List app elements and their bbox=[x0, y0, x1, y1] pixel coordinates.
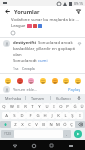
staticText: Paylaş bbox=[68, 87, 81, 92]
staticText: 1sa bbox=[13, 66, 19, 71]
button[interactable]: F bbox=[26, 112, 34, 119]
button[interactable]: Merhaba bbox=[2, 94, 25, 102]
button[interactable]: B bbox=[40, 121, 47, 128]
button[interactable]: Z bbox=[11, 121, 19, 128]
staticText: Q bbox=[2, 104, 6, 110]
staticText: 09:15 bbox=[74, 1, 83, 6]
button[interactable]: J bbox=[48, 112, 55, 119]
button[interactable]: Tamam bbox=[26, 94, 50, 102]
button[interactable]: Back bbox=[3, 7, 11, 15]
button[interactable]: Kullanıcı bbox=[51, 94, 75, 102]
staticText: O bbox=[59, 104, 63, 110]
button[interactable]: Emoji 1 bbox=[16, 77, 23, 84]
button[interactable]: T bbox=[29, 103, 36, 110]
button[interactable]: Y bbox=[36, 103, 43, 110]
button[interactable]: Filter bbox=[74, 7, 82, 15]
staticText: Vodafone sunar bu maçlarda biz UEFA Cham… bbox=[11, 17, 81, 23]
button[interactable]: destiyerifti bbox=[0, 38, 85, 73]
staticText: N bbox=[49, 122, 53, 128]
staticText: B bbox=[42, 122, 45, 128]
staticText: T bbox=[31, 104, 34, 110]
button[interactable]: V bbox=[33, 121, 40, 128]
button[interactable]: L bbox=[62, 112, 69, 119]
button[interactable]: Ğ bbox=[71, 103, 78, 110]
button[interactable]: Home bbox=[29, 141, 38, 150]
button[interactable]: ?123 bbox=[1, 130, 14, 138]
button[interactable]: K bbox=[55, 112, 62, 119]
staticText: Tamam bbox=[31, 96, 45, 101]
staticText: Ç bbox=[70, 122, 73, 128]
button[interactable]: Hide keyboard bbox=[66, 141, 75, 150]
staticText: K bbox=[57, 113, 60, 119]
button[interactable]: D bbox=[18, 112, 26, 119]
button[interactable]: S bbox=[10, 112, 18, 119]
staticText: Z bbox=[14, 122, 17, 128]
staticText: S bbox=[13, 113, 16, 119]
staticText: Merhaba bbox=[5, 96, 22, 101]
staticText: cumi bbox=[38, 58, 48, 64]
button[interactable]: P bbox=[64, 103, 71, 110]
button[interactable]: U bbox=[43, 103, 50, 110]
button[interactable]: Ç bbox=[68, 121, 75, 128]
button[interactable]: G bbox=[34, 112, 41, 119]
button[interactable]: A bbox=[2, 112, 10, 119]
button[interactable]: W bbox=[8, 103, 15, 110]
staticText: R bbox=[24, 104, 27, 110]
button[interactable]: M bbox=[54, 121, 61, 128]
button[interactable] bbox=[11, 31, 15, 35]
staticText: Y bbox=[38, 104, 41, 110]
button[interactable]: Ü bbox=[78, 103, 85, 110]
button[interactable]: Yorum ekle... bbox=[13, 87, 67, 92]
staticText: Ş bbox=[71, 113, 74, 119]
staticText: Ğ bbox=[73, 104, 77, 110]
button[interactable]: Emoji 5 bbox=[62, 77, 69, 84]
staticText: I bbox=[79, 113, 81, 119]
staticText: W bbox=[10, 104, 14, 110]
button[interactable]: Ş bbox=[69, 112, 76, 119]
button[interactable]: Recents bbox=[47, 141, 56, 150]
button[interactable]: Emoji 2 bbox=[27, 77, 34, 84]
staticText: Sonuclarad ancak bbox=[38, 40, 73, 46]
staticText: League bbox=[11, 23, 27, 29]
staticText: X bbox=[21, 122, 24, 128]
staticText: Ö bbox=[63, 122, 67, 128]
button[interactable]: I bbox=[76, 112, 83, 119]
button[interactable]: C bbox=[26, 121, 33, 128]
staticText: D bbox=[20, 113, 24, 119]
button[interactable]: Paylaş bbox=[67, 87, 82, 92]
staticText: E bbox=[17, 104, 20, 110]
button[interactable]: Like bbox=[76, 40, 82, 46]
staticText: G bbox=[36, 113, 40, 119]
button[interactable]: X bbox=[19, 121, 26, 128]
staticText: Yorumlar bbox=[14, 8, 40, 15]
button[interactable]: Send bbox=[74, 130, 82, 138]
button[interactable]: . bbox=[63, 130, 71, 138]
staticText: P bbox=[66, 104, 69, 110]
button[interactable]: Emoji 6 bbox=[74, 77, 81, 84]
staticText: M bbox=[56, 122, 60, 128]
staticText: C bbox=[28, 122, 31, 128]
staticText: A bbox=[5, 113, 8, 119]
button[interactable]: Shift bbox=[0, 121, 11, 128]
button[interactable]: O bbox=[57, 103, 64, 110]
button[interactable]: Backspace bbox=[75, 121, 85, 128]
staticText: Cevapla bbox=[22, 66, 35, 71]
button[interactable]: Voice input bbox=[75, 94, 83, 102]
staticText: Kullanıcı bbox=[56, 96, 71, 101]
button[interactable]: Emoji 3 bbox=[39, 77, 46, 84]
button[interactable]: Ö bbox=[61, 121, 68, 128]
staticText: ?123 bbox=[4, 132, 11, 136]
button[interactable]: E bbox=[15, 103, 22, 110]
button[interactable]: I bbox=[50, 103, 57, 110]
button[interactable]: Emoji 0 bbox=[4, 77, 11, 84]
button[interactable]: Q bbox=[0, 103, 8, 110]
button[interactable]: H bbox=[41, 112, 48, 119]
staticText: Ü bbox=[80, 104, 84, 110]
staticText: V bbox=[35, 122, 38, 128]
button[interactable]: Emoji 4 bbox=[51, 77, 58, 84]
button[interactable]: Back bbox=[10, 141, 19, 150]
staticText: L bbox=[64, 113, 67, 119]
button[interactable]: N bbox=[47, 121, 54, 128]
button[interactable]: R bbox=[22, 103, 29, 110]
